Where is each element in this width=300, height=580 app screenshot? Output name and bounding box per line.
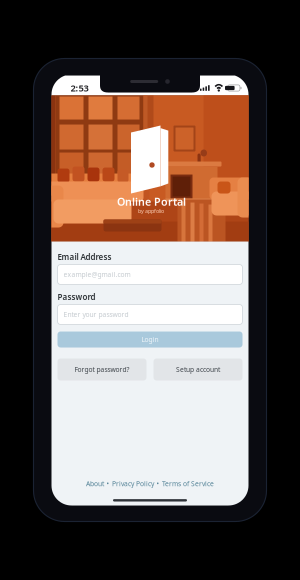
staticText: Login [141, 335, 158, 344]
button[interactable]: Terms of Service [162, 479, 214, 488]
staticText: • [106, 479, 109, 488]
staticText: Terms of Service [162, 479, 214, 488]
staticText: by appfolio [138, 207, 164, 215]
staticText: Email Address [57, 252, 111, 262]
staticText: 2:53 [70, 82, 88, 94]
staticText: • [156, 479, 159, 488]
staticText: Forgot password? [74, 365, 129, 374]
staticText: example@gmail.com [63, 270, 130, 279]
staticText: Password [57, 292, 95, 302]
staticText: Online Portal [117, 194, 186, 209]
button[interactable]: Setup account [153, 358, 242, 380]
staticText: Setup account [176, 365, 220, 374]
button[interactable]: Login [57, 331, 242, 347]
button[interactable]: About [86, 479, 104, 488]
staticText: About [86, 479, 104, 488]
staticText: Privacy Policy [112, 479, 154, 488]
button[interactable]: Forgot password? [57, 358, 146, 380]
staticText: Enter your password [63, 310, 128, 319]
button[interactable]: Privacy Policy [112, 479, 154, 488]
